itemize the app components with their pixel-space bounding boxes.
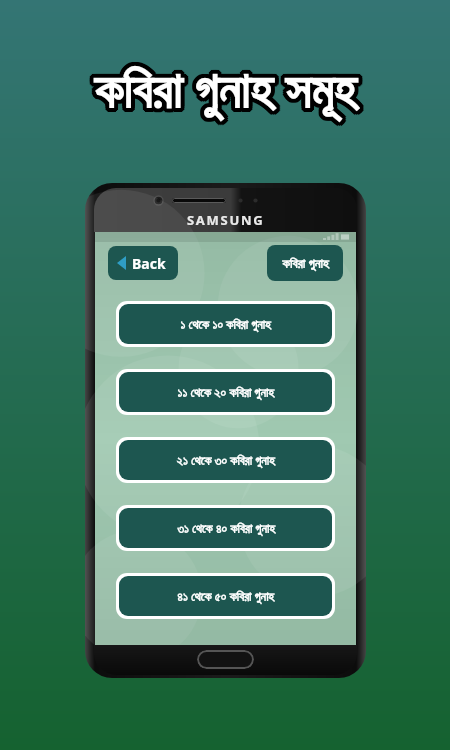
button[interactable]: ১১ থেকে ২০ কবিরা গুনাহ <box>119 372 332 412</box>
button[interactable]: কবিরা গুনাহ <box>267 245 343 281</box>
staticText: ২১ থেকে ৩০ কবিরা গুনাহ <box>176 452 275 469</box>
staticText: কবিরা গুনাহ সমূহ <box>97 52 359 120</box>
staticText: ৩১ থেকে ৪০ কবিরা গুনাহ <box>177 520 275 537</box>
staticText: কবিরা গুনাহ সমূহ <box>91 58 353 126</box>
staticText: কবিরা গুনাহ সমূহ <box>90 53 352 121</box>
staticText: কবিরা গুনাহ সমূহ <box>92 51 354 119</box>
other: Home <box>197 650 254 669</box>
staticText: কবিরা গুনাহ সমূহ <box>98 55 360 123</box>
staticText: ৪১ থেকে ৫০ কবিরা গুনাহ <box>177 588 274 605</box>
staticText: কবিরা গুনাহ সমূহ <box>90 55 352 123</box>
staticText: কবিরা গুনাহ সমূহ <box>94 59 356 127</box>
staticText: কবিরা গুনাহ সমূহ <box>96 59 358 127</box>
staticText: ১ থেকে ১০ কবিরা গুনাহ <box>180 316 271 333</box>
button[interactable]: ৩১ থেকে ৪০ কবিরা গুনাহ <box>119 508 332 548</box>
staticText: কবিরা গুনাহ <box>282 254 329 272</box>
staticText: কবিরা গুনাহ সমূহ <box>90 57 352 125</box>
staticText: কবিরা গুনাহ সমূহ <box>92 59 354 127</box>
button[interactable]: ৪১ থেকে ৫০ কবিরা গুনাহ <box>119 576 332 616</box>
staticText: কবিরা গুনাহ সমূহ <box>97 58 359 126</box>
staticText: ১১ থেকে ২০ কবিরা গুনাহ <box>177 384 274 401</box>
staticText: কবিরা গুনাহ সমূহ <box>96 51 358 119</box>
staticText: কবিরা গুনাহ সমূহ <box>98 53 360 121</box>
button[interactable]: ১ থেকে ১০ কবিরা গুনাহ <box>119 304 332 344</box>
staticText: কবিরা গুনাহ সমূহ <box>94 51 356 119</box>
staticText: SAMSUNG <box>187 211 265 229</box>
staticText: কবিরা গুনাহ সমূহ <box>94 55 356 123</box>
staticText: কবিরা গুনাহ সমূহ <box>98 57 360 125</box>
button[interactable]: Back <box>108 246 178 280</box>
button[interactable]: ২১ থেকে ৩০ কবিরা গুনাহ <box>119 440 332 480</box>
staticText: Back <box>132 254 166 273</box>
staticText: কবিরা গুনাহ সমূহ <box>91 52 353 120</box>
